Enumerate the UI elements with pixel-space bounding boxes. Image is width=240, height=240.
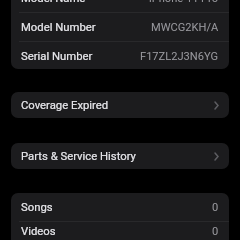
button[interactable]: Songs xyxy=(11,193,229,221)
button[interactable]: Videos xyxy=(11,222,229,240)
staticText: MWCG2KH/A xyxy=(151,21,219,34)
other: Open Parts & Service History xyxy=(214,152,219,161)
staticText: Serial Number xyxy=(21,50,93,63)
other: Open Coverage Expired xyxy=(214,101,219,110)
button[interactable]: Model Name xyxy=(11,0,229,12)
button[interactable]: Serial Number xyxy=(11,42,229,69)
staticText: F17ZL2J3N6YG xyxy=(140,50,219,63)
staticText: Songs xyxy=(21,201,53,214)
staticText: Model Number xyxy=(21,21,96,34)
button[interactable]: Model Number xyxy=(11,13,229,41)
staticText: Model Name xyxy=(21,0,86,5)
button[interactable]: Parts & Service History xyxy=(11,143,229,169)
staticText: Coverage Expired xyxy=(21,99,109,112)
staticText: 0 xyxy=(212,201,219,214)
staticText: iPhone 11 Pro xyxy=(149,0,219,5)
staticText: Parts & Service History xyxy=(21,150,136,163)
staticText: 0 xyxy=(212,225,219,238)
button[interactable]: Coverage Expired xyxy=(11,92,229,118)
staticText: Videos xyxy=(21,225,56,238)
